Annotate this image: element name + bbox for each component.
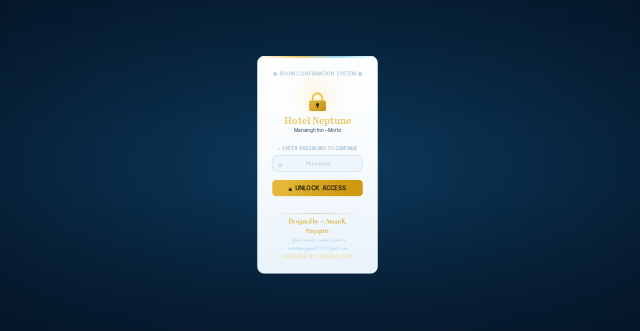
staticText: ❖ R O O M C O N F I R M A T I O N S Y S … [272, 71, 362, 77]
staticText: Designed by — Aman K. [288, 218, 346, 225]
staticText: P O W E R E D B Y T E C H N O L O G Y [283, 254, 352, 260]
staticText: ⟡ E N T E R P A S S W O R D T O C O N T … [277, 146, 357, 151]
staticText: U N L O C K A C C E S S [295, 184, 346, 192]
staticText: Just a simple creation of device [289, 236, 346, 244]
staticText: avdidakprajapati2540@gmail.com [287, 244, 347, 252]
staticText: Hotel Neptune [284, 114, 351, 127]
staticText: Mansingh Inn – Morbi [294, 127, 341, 133]
button[interactable]: U N L O C K A C C E S S [272, 180, 363, 196]
staticText: Password [305, 160, 329, 167]
button[interactable]: Password [273, 155, 362, 171]
staticText: Prajapati [306, 227, 329, 234]
